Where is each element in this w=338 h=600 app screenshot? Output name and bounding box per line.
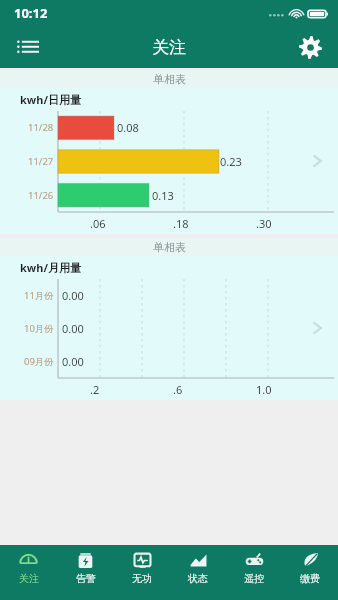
staticText: 0.23 <box>220 154 242 169</box>
staticText: 关注 <box>19 572 39 585</box>
button[interactable]: Next <box>304 315 330 341</box>
staticText: 11/28 <box>28 121 54 134</box>
staticText: 1.0 <box>256 382 272 397</box>
button[interactable]: 缴费 <box>282 545 338 600</box>
staticText: 0.00 <box>62 354 84 369</box>
button[interactable]: 关注 <box>0 545 57 600</box>
staticText: 10:12 <box>14 4 48 22</box>
button[interactable]: 无功 <box>114 545 170 600</box>
staticText: 关注 <box>152 37 186 58</box>
staticText: 09月份 <box>24 355 54 368</box>
staticText: 11/26 <box>28 189 54 202</box>
button[interactable]: 单相表 <box>0 238 338 400</box>
staticText: 单相表 <box>153 72 186 86</box>
button[interactable]: 状态 <box>170 545 226 600</box>
staticText: .6 <box>173 382 183 397</box>
staticText: 10月份 <box>24 322 54 335</box>
staticText: 11/27 <box>28 155 54 168</box>
staticText: .2 <box>90 382 100 397</box>
staticText: 缴费 <box>300 572 320 585</box>
staticText: .18 <box>173 216 189 231</box>
button[interactable]: 告警 <box>57 545 114 600</box>
button[interactable]: 遥控 <box>226 545 282 600</box>
staticText: kwh/日用量 <box>20 92 81 107</box>
button[interactable]: Settings <box>290 27 330 67</box>
staticText: 遥控 <box>244 572 264 585</box>
staticText: .30 <box>256 216 272 231</box>
staticText: .06 <box>90 216 106 231</box>
staticText: 无功 <box>132 572 152 585</box>
button[interactable]: Menu <box>8 27 48 67</box>
staticText: 0.00 <box>62 288 84 303</box>
staticText: 告警 <box>76 572 96 585</box>
staticText: 0.08 <box>117 120 139 135</box>
staticText: kwh/月用量 <box>20 260 81 275</box>
button[interactable]: Next <box>304 148 330 174</box>
staticText: 0.13 <box>152 188 174 203</box>
button[interactable]: 单相表 <box>0 70 338 234</box>
staticText: 0.00 <box>62 321 84 336</box>
staticText: 状态 <box>188 572 208 585</box>
staticText: 11月份 <box>24 289 54 302</box>
staticText: 单相表 <box>153 240 186 254</box>
